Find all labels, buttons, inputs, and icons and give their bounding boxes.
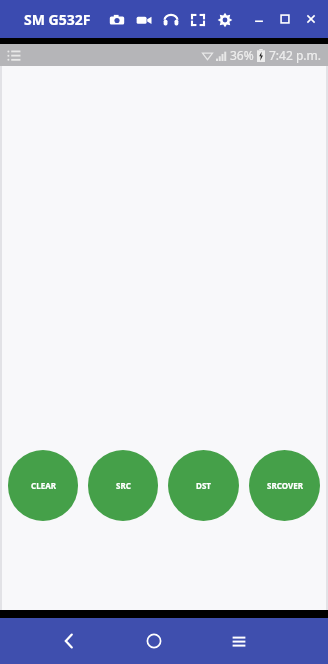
staticText: SM G532F [24,10,91,29]
button[interactable]: Fullscreen [190,12,206,28]
staticText: SRC [116,480,131,491]
button[interactable]: Minimize [252,12,266,26]
button[interactable]: Home [137,624,171,658]
staticText: SRCOVER [267,480,303,491]
button[interactable]: Screenshot [109,12,125,28]
button[interactable]: CLEAR [8,450,78,521]
button[interactable]: Close [304,12,318,26]
staticText: DST [196,480,211,491]
button[interactable]: Recent apps [222,624,256,658]
staticText: CLEAR [31,480,56,491]
button[interactable]: Maximize [278,12,292,26]
button[interactable]: Back [52,624,86,658]
button[interactable]: Record video [136,12,152,28]
button[interactable]: Settings [217,12,233,28]
button[interactable]: DST [168,450,239,521]
button[interactable]: SRC [88,450,158,521]
button[interactable]: SRCOVER [249,450,320,521]
button[interactable]: Audio [163,12,179,28]
staticText: 36% [230,47,254,63]
staticText: 7:42 p.m. [269,47,321,63]
